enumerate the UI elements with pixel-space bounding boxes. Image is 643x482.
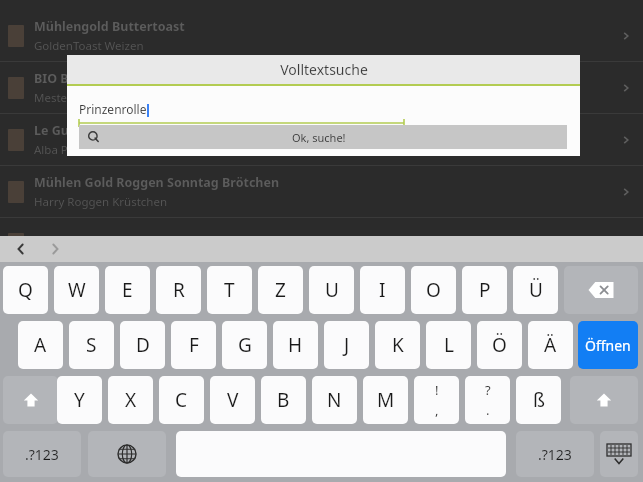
button[interactable]: Z [258,266,303,314]
staticText: GoldenToast Weizen [34,38,144,54]
button[interactable]: Change keyboard language [88,431,166,477]
staticText: T [224,277,235,303]
staticText: I [379,277,386,303]
button[interactable]: ! [414,376,459,424]
button[interactable]: I [360,266,405,314]
staticText: , [435,401,439,419]
staticText: K [392,332,404,358]
button[interactable]: P [462,266,507,314]
button[interactable]: J [324,321,369,369]
button[interactable]: Backspace [564,266,638,314]
staticText: . [486,401,490,419]
staticText: G [238,332,252,358]
staticText: Q [18,277,33,303]
staticText: ! [435,381,439,399]
button[interactable]: ß [516,376,561,424]
button[interactable]: A [18,321,63,369]
button[interactable]: Le Gusto [0,114,643,166]
staticText: U [325,277,339,303]
button[interactable]: Shift [3,376,58,424]
button[interactable]: BIO Brot [0,62,643,114]
staticText: Ü [529,277,543,303]
button[interactable]: Shift right [570,376,638,424]
staticText: Alba Pfeffer [34,142,98,158]
button[interactable]: Previous field [8,236,34,262]
button[interactable]: L [426,321,471,369]
button[interactable]: Mühlengold Buttertoast [0,10,643,62]
button[interactable]: N [312,376,357,424]
staticText: H [288,332,303,358]
button[interactable]: Next field [42,236,68,262]
button[interactable]: Ok, suche! [79,125,567,149]
button[interactable]: C [159,376,204,424]
staticText: N [327,387,342,413]
button[interactable]: R [156,266,201,314]
staticText: B [277,387,290,413]
staticText: Ä [544,332,557,358]
button[interactable]: K [375,321,420,369]
staticText: Mühlen Gold Roggen Sonntag Brötchen [34,174,280,191]
button[interactable]: ? [465,376,510,424]
staticText: Volltextsuche [280,60,368,79]
button[interactable]: Ü [513,266,558,314]
button[interactable]: Mühlen Gold Roggen Sonntag Brötchen [0,166,643,218]
button[interactable]: O [411,266,456,314]
staticText: M [377,387,395,413]
staticText: Ok, suche! [292,130,346,145]
staticText: X [125,387,137,413]
staticText: Le Gusto [34,122,89,139]
button[interactable]: T [207,266,252,314]
staticText: Sweetland Super Bär [34,235,164,252]
staticText: J [344,332,350,358]
staticText: A [34,332,47,358]
staticText: ß [533,387,545,413]
button[interactable]: Hide keyboard [600,431,638,477]
staticText: C [175,387,188,413]
button[interactable]: Q [3,266,48,314]
staticText: .?123 [25,445,59,464]
staticText: Harry Roggen Krüstchen [34,194,168,210]
staticText: Y [74,387,85,413]
button[interactable]: M [363,376,408,424]
button[interactable]: Sweetland Super Bär [0,218,643,270]
staticText: Prinzenrolle [79,101,147,117]
staticText: W [68,277,86,303]
staticText: V [227,387,239,413]
staticText: Mühlengold Buttertoast [34,18,185,35]
button[interactable]: D [120,321,165,369]
button[interactable]: S [69,321,114,369]
staticText: S [86,332,97,358]
button[interactable]: .?123 [516,431,594,477]
button[interactable]: V [210,376,255,424]
button[interactable]: Y [57,376,102,424]
staticText: ? [485,381,491,399]
staticText: Ö [492,332,507,358]
button[interactable]: Öffnen [578,321,638,369]
staticText: D [136,332,150,358]
button[interactable]: Ä [528,321,573,369]
button[interactable]: B [261,376,306,424]
staticText: Mestemacher [34,90,109,106]
button[interactable]: Ö [477,321,522,369]
staticText: P [479,277,491,303]
staticText: O [426,277,441,303]
button[interactable]: X [108,376,153,424]
button[interactable]: .?123 [3,431,81,477]
button[interactable]: E [105,266,150,314]
staticText: L [444,332,454,358]
button[interactable]: U [309,266,354,314]
staticText: .?123 [538,445,572,464]
button[interactable]: W [54,266,99,314]
staticText: BIO Brot [34,70,88,87]
staticText: Z [275,277,286,303]
staticText: E [122,277,133,303]
staticText: R [173,277,185,303]
button[interactable]: H [273,321,318,369]
staticText: F [189,332,199,358]
button[interactable]: F [171,321,216,369]
button[interactable]: G [222,321,267,369]
staticText: Öffnen [585,336,631,355]
